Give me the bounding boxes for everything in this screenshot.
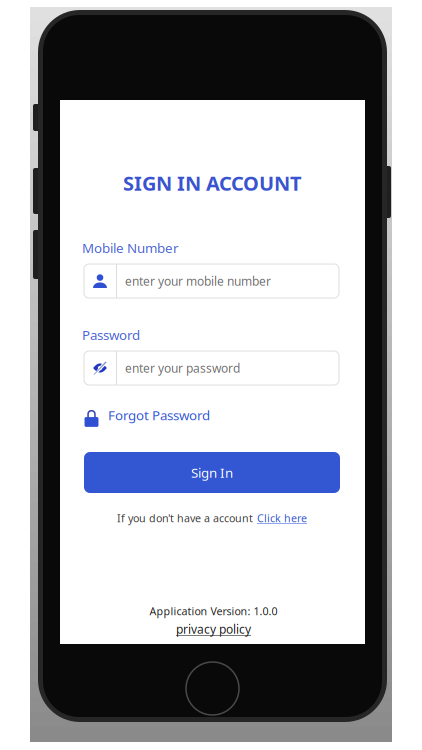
button[interactable]: Click here (257, 511, 307, 525)
staticText: enter your mobile number (125, 273, 271, 289)
staticText: privacy policy (176, 621, 251, 637)
staticText: Forgot Password (108, 406, 210, 424)
button[interactable]: Sign In (84, 452, 340, 493)
staticText: SIGN IN ACCOUNT (123, 170, 302, 196)
staticText: Click here (257, 511, 307, 525)
button[interactable]: Forgot Password (83, 403, 210, 427)
button[interactable]: privacy policy (176, 621, 251, 637)
staticText: Sign In (191, 464, 233, 481)
staticText: Application Version: 1.0.0 (149, 604, 277, 618)
staticText: enter your password (125, 360, 240, 376)
staticText: Mobile Number (82, 239, 179, 257)
staticText: If you don't have a account (117, 511, 253, 525)
staticText: Password (82, 326, 140, 344)
